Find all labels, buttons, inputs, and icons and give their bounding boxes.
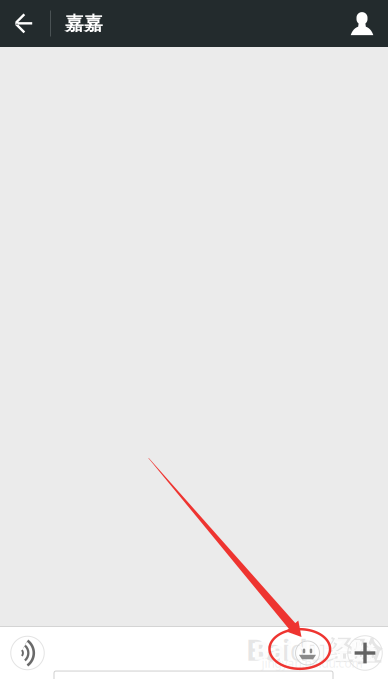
staticText: 嘉嘉 xyxy=(65,12,103,35)
staticText: Baidu经验 xyxy=(246,631,382,669)
button[interactable]: Contact profile xyxy=(336,0,388,47)
button[interactable]: Message xyxy=(54,671,333,679)
button[interactable]: Back xyxy=(0,0,50,47)
staticText: jingyan.baidu.com xyxy=(261,655,362,671)
button[interactable]: More options xyxy=(348,636,382,670)
button[interactable]: Emoji keyboard xyxy=(290,636,324,670)
staticText: Baidu经验 xyxy=(246,631,382,669)
button[interactable]: Voice message xyxy=(11,636,44,670)
button[interactable]: 嘉嘉 xyxy=(51,0,131,47)
